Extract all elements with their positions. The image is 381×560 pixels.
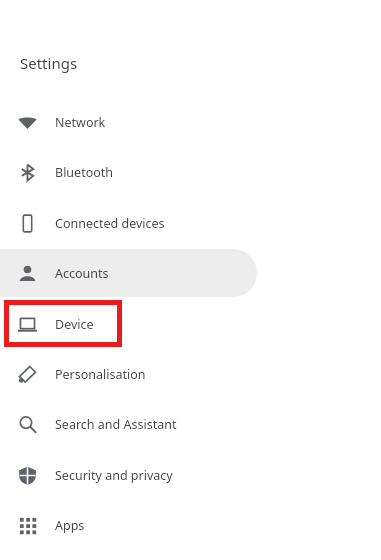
staticText: Accounts — [55, 265, 109, 282]
other: Device — [18, 315, 37, 334]
other: Network — [18, 113, 37, 132]
other: Connected devices — [18, 214, 37, 233]
button[interactable]: Device — [0, 300, 257, 348]
other: Search and Assistant — [18, 415, 37, 434]
other: Security and privacy — [18, 466, 37, 485]
other: Apps — [18, 516, 37, 535]
staticText: Search and Assistant — [55, 416, 177, 433]
button[interactable]: Connected devices — [0, 199, 257, 247]
button[interactable]: Search and Assistant — [0, 400, 257, 448]
button[interactable]: Accounts — [0, 249, 257, 297]
other: Personalisation — [18, 365, 37, 384]
button[interactable]: Network — [0, 98, 257, 146]
button[interactable]: Bluetooth — [0, 148, 257, 196]
button[interactable]: Personalisation — [0, 350, 257, 398]
staticText: Bluetooth — [55, 164, 114, 181]
staticText: Network — [55, 114, 106, 131]
button[interactable]: Apps — [0, 501, 257, 549]
other: Bluetooth — [18, 163, 37, 182]
staticText: Device — [55, 316, 94, 333]
staticText: Connected devices — [55, 215, 165, 232]
staticText: Apps — [55, 517, 85, 534]
staticText: Security and privacy — [55, 467, 173, 484]
other: Accounts — [18, 264, 37, 283]
staticText: Personalisation — [55, 366, 146, 383]
staticText: Settings — [20, 53, 78, 73]
button[interactable]: Security and privacy — [0, 451, 257, 499]
